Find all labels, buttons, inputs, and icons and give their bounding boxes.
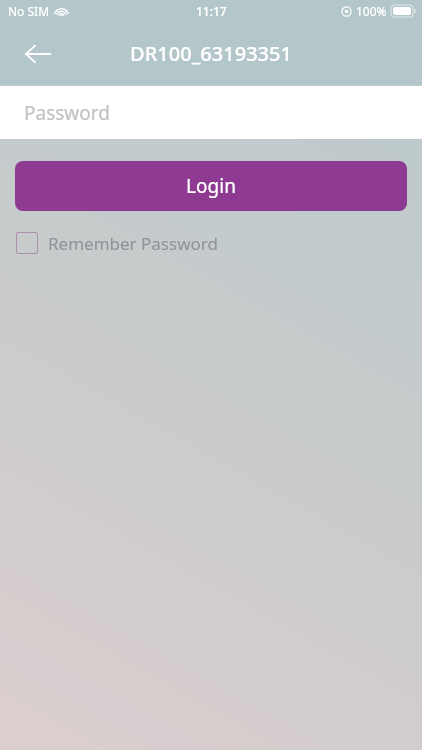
button[interactable]: Remember Password: [16, 228, 218, 258]
staticText: 100%: [356, 3, 387, 19]
staticText: Login: [186, 173, 236, 199]
staticText: Password: [24, 100, 110, 126]
button[interactable]: Back: [10, 26, 66, 82]
button[interactable]: Login: [15, 161, 407, 211]
staticText: DR100_63193351: [130, 40, 292, 67]
staticText: 11:17: [196, 3, 227, 19]
button[interactable]: Password: [0, 86, 422, 139]
staticText: Remember Password: [48, 232, 218, 255]
staticText: No SIM: [8, 3, 50, 19]
